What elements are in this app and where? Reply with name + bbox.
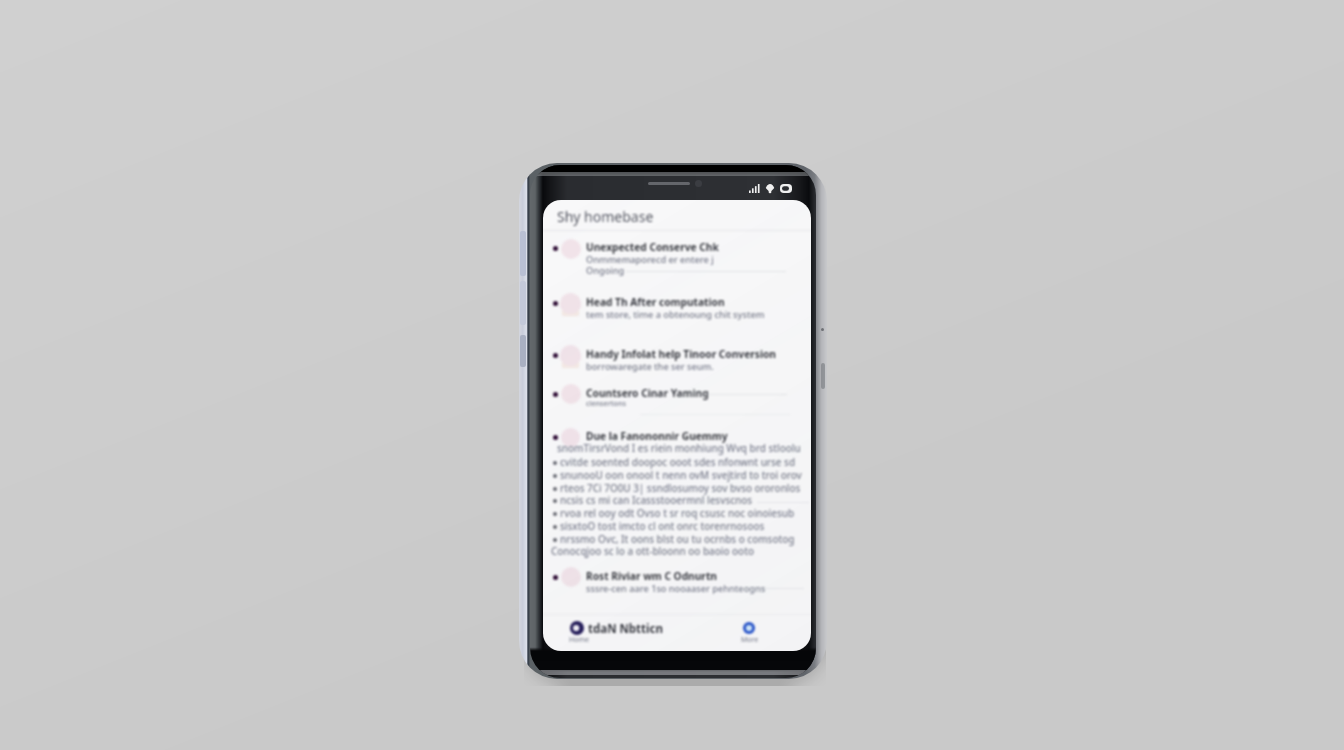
- staticText: snomTirsrVond I es riein monhiung Wvq br…: [557, 441, 801, 454]
- staticText: rvoa rel ooy odt Ovso t sr roq csusc noc…: [560, 506, 795, 519]
- staticText: tdaN Nbtticn: [588, 621, 663, 637]
- staticText: cvitde soented doopoc ooot sdes nfonwnt …: [560, 455, 796, 468]
- button[interactable]: Rost Riviar wm C Odnurtn: [543, 563, 811, 599]
- staticText: Head Th After computation: [586, 295, 725, 309]
- staticText: Ongoing: [586, 264, 625, 277]
- staticText: sisxtoO tost imcto cl ont onrc torenrnos…: [560, 519, 765, 532]
- button[interactable]: Unexpected Conserve Chk: [543, 234, 811, 278]
- staticText: tem store, time a obtenoung chit system: [586, 308, 765, 321]
- staticText: clensertons: [586, 398, 626, 408]
- staticText: Shy homebase: [557, 207, 654, 226]
- staticText: Onmmemaporecd er entere j: [586, 253, 714, 266]
- staticText: More: [741, 635, 759, 645]
- button[interactable]: tdaN Nbtticn: [566, 616, 676, 648]
- staticText: Unexpected Conserve Chk: [586, 240, 719, 254]
- staticText: sssre-cen aare 1so nooaaser pehnteogns: [586, 582, 766, 595]
- button[interactable]: Head Th After computation: [543, 289, 811, 325]
- staticText: Conocqjoo sc lo a ott-bloonn oo baoio oo…: [551, 544, 754, 557]
- staticText: Home: [569, 635, 589, 645]
- button[interactable]: Shy homebase: [543, 200, 811, 230]
- button[interactable]: Countsero Cinar Yaming: [543, 380, 811, 412]
- button[interactable]: More: [735, 616, 771, 648]
- staticText: Rost Riviar wm C Odnurtn: [586, 569, 717, 583]
- button[interactable]: Due la Fanononnir Guemmy: [543, 424, 811, 560]
- staticText: ncsis cs mi can Icassstooermnl lesvscnos: [560, 493, 753, 506]
- staticText: rteos 7Ci 7O0U 3| ssndlosumoy sov bvso o…: [560, 481, 801, 494]
- staticText: Countsero Cinar Yaming: [586, 386, 709, 400]
- staticText: nrssmo Ovc, It oons blst ou tu ocrnbs o …: [560, 532, 795, 545]
- staticText: snunooU oon onool t nenn ovM svejtird to…: [560, 468, 802, 481]
- staticText: Handy Infolat help Tinoor Conversion: [586, 347, 776, 361]
- staticText: Due la Fanononnir Guemmy: [586, 429, 728, 443]
- staticText: borrowaregate the ser seum.: [586, 360, 714, 373]
- button[interactable]: Handy Infolat help Tinoor Conversion: [543, 341, 811, 377]
